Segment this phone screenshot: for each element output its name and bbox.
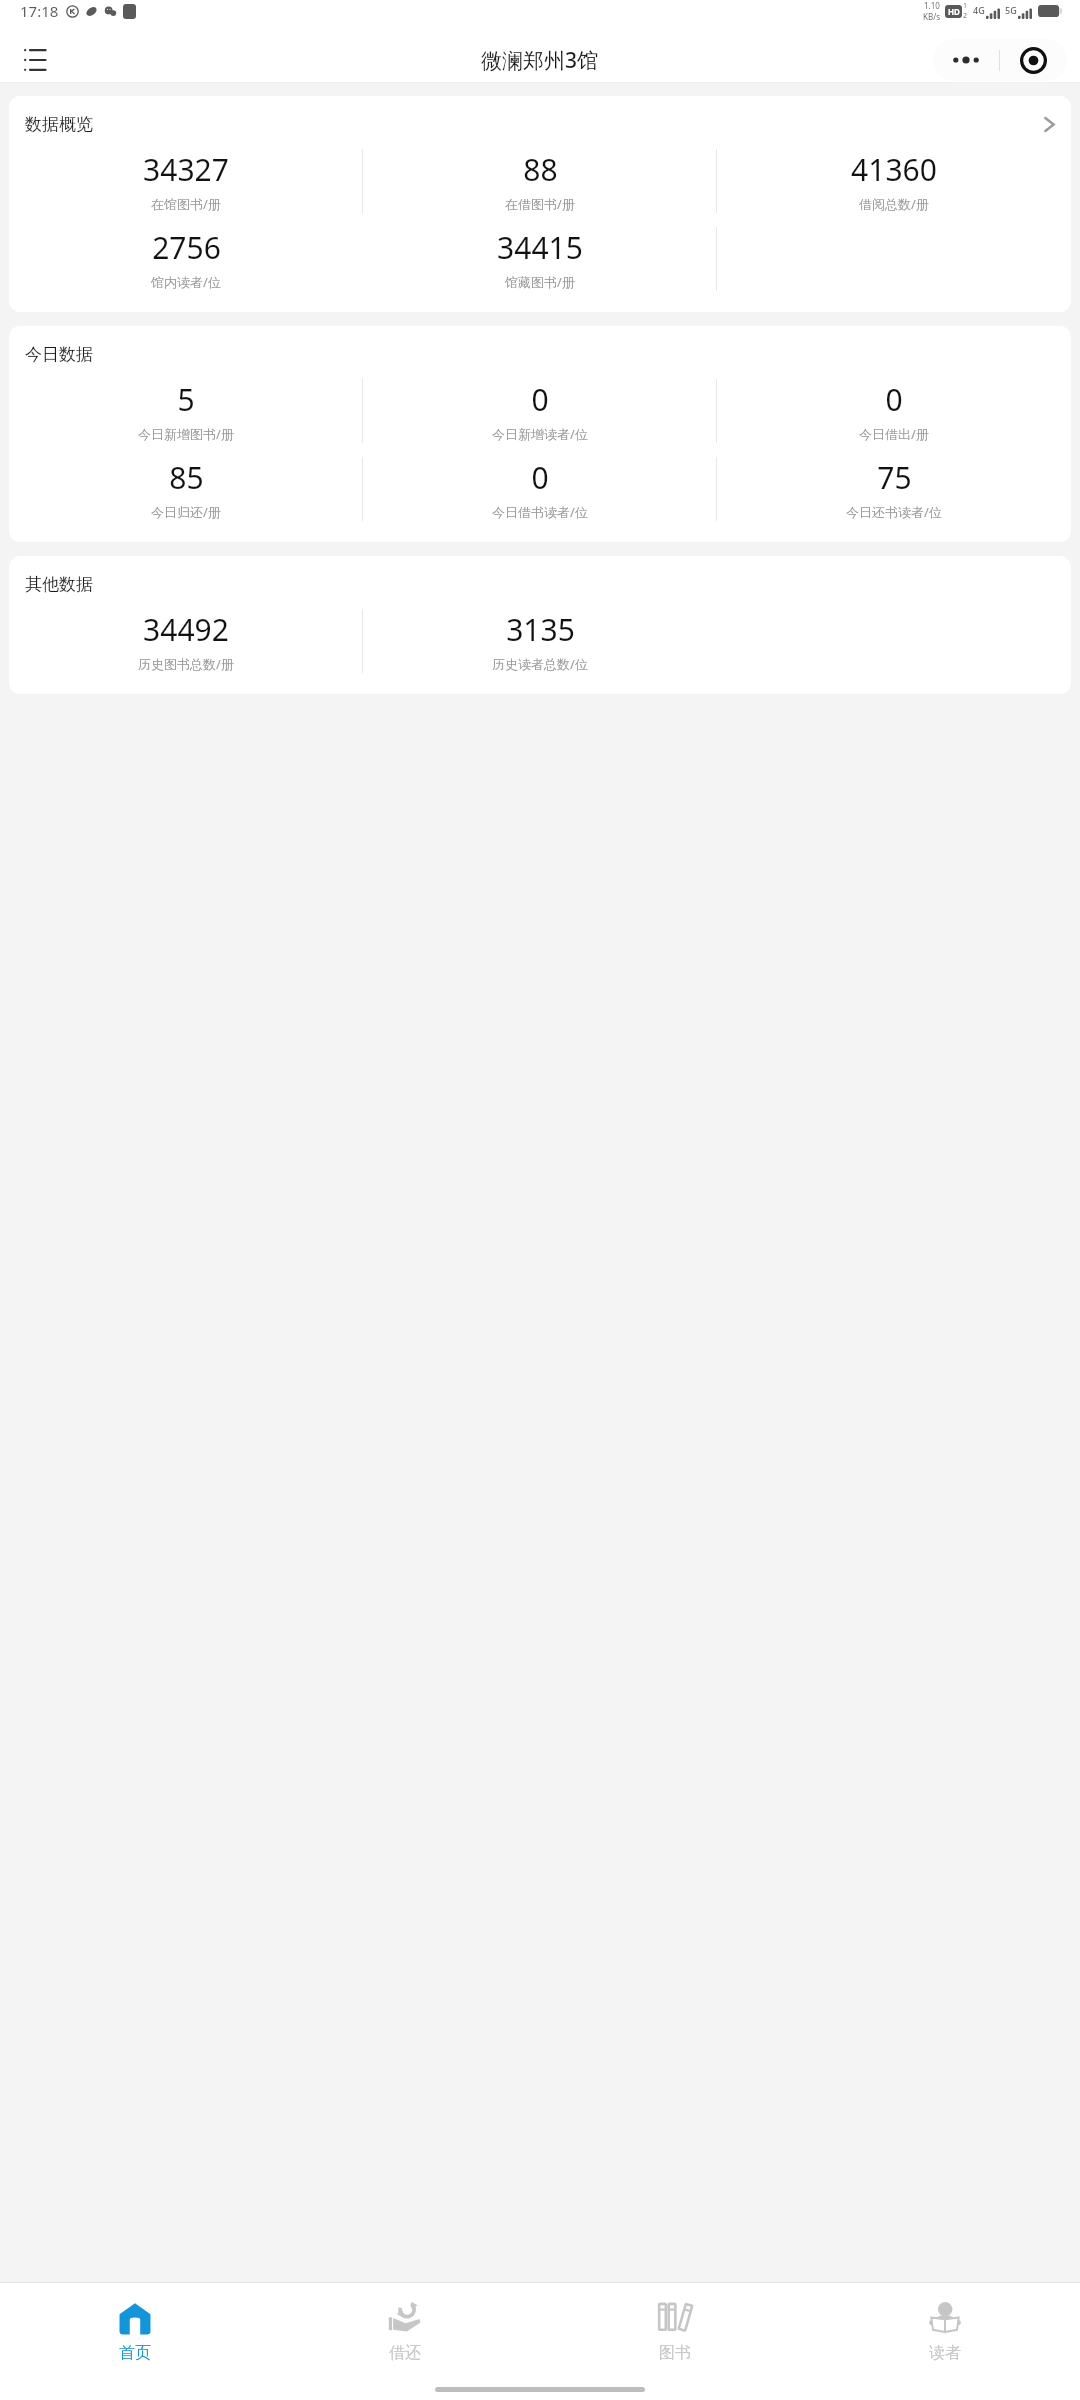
- staticText: 今日还书读者/位: [846, 503, 942, 521]
- staticText: 馆藏图书/册: [505, 273, 575, 291]
- button[interactable]: More: [933, 39, 999, 81]
- staticText: 0: [531, 457, 549, 498]
- staticText: 2: [963, 11, 968, 21]
- staticText: 图书: [659, 2343, 691, 2363]
- staticText: 1: [963, 1, 968, 11]
- staticText: 4G: [973, 4, 985, 16]
- staticText: HD: [948, 6, 960, 17]
- staticText: 今日归还/册: [151, 503, 221, 521]
- button[interactable]: 借还: [270, 2283, 540, 2379]
- staticText: 数据概览: [25, 114, 93, 135]
- staticText: 首页: [119, 2343, 151, 2363]
- button[interactable]: 读者: [810, 2283, 1080, 2379]
- staticText: 0: [885, 379, 903, 420]
- staticText: 借阅总数/册: [859, 195, 929, 213]
- button[interactable]: 其他数据: [9, 556, 1071, 694]
- staticText: 今日数据: [25, 344, 93, 365]
- staticText: 85: [169, 457, 204, 498]
- staticText: 微澜郑州3馆: [481, 46, 599, 75]
- staticText: 今日新增读者/位: [492, 425, 588, 443]
- staticText: 今日借书读者/位: [492, 503, 588, 521]
- staticText: KB/s: [923, 11, 940, 22]
- staticText: 其他数据: [25, 574, 93, 595]
- button[interactable]: 首页: [0, 2283, 270, 2379]
- button[interactable]: 今日数据: [9, 326, 1071, 542]
- staticText: 1.10: [924, 0, 940, 11]
- staticText: 借还: [389, 2343, 421, 2363]
- staticText: 88: [523, 149, 558, 190]
- staticText: 3135: [506, 609, 575, 650]
- staticText: 34415: [497, 227, 583, 268]
- button[interactable]: 图书: [540, 2283, 810, 2379]
- staticText: 41360: [851, 149, 937, 190]
- staticText: 今日借出/册: [859, 425, 929, 443]
- button[interactable]: Menu: [20, 43, 54, 77]
- staticText: 在馆图书/册: [151, 195, 221, 213]
- staticText: 0: [531, 379, 549, 420]
- staticText: 75: [877, 457, 912, 498]
- staticText: 历史读者总数/位: [492, 655, 588, 673]
- staticText: 34492: [143, 609, 229, 650]
- button[interactable]: Close: [1000, 39, 1067, 81]
- staticText: 5G: [1005, 4, 1017, 16]
- staticText: 历史图书总数/册: [138, 655, 234, 673]
- staticText: 馆内读者/位: [151, 273, 221, 291]
- button[interactable]: 数据概览: [9, 96, 1071, 312]
- staticText: 34327: [143, 149, 229, 190]
- staticText: 读者: [929, 2343, 961, 2363]
- staticText: 2756: [152, 227, 221, 268]
- staticText: 在借图书/册: [505, 195, 575, 213]
- staticText: 5: [177, 379, 195, 420]
- staticText: 今日新增图书/册: [138, 425, 234, 443]
- staticText: 17:18: [20, 1, 59, 21]
